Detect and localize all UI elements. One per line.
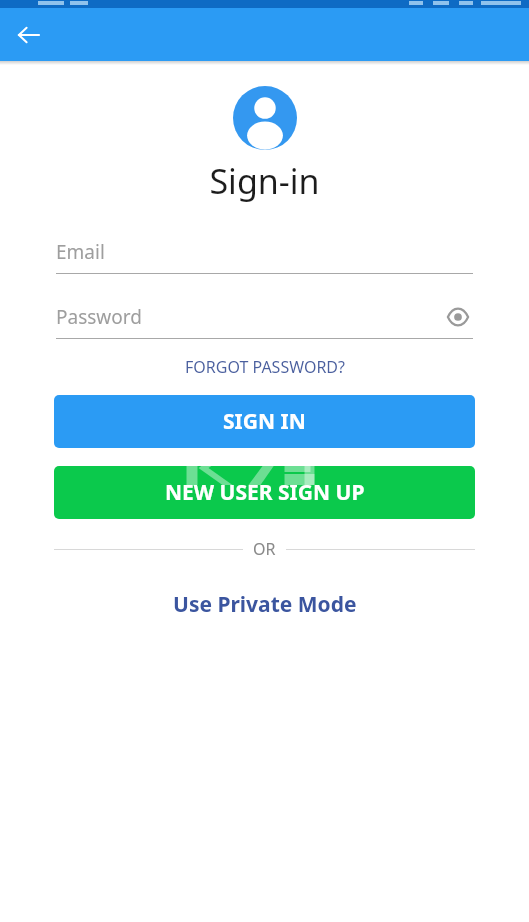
staticText: OR — [253, 538, 276, 560]
button[interactable]: Use Private Mode — [161, 586, 369, 623]
button[interactable]: Show password — [443, 302, 473, 332]
button[interactable]: SIGN IN — [54, 395, 475, 448]
staticText: NEW USER SIGN UP — [165, 478, 365, 507]
staticText: Sign-in — [209, 158, 320, 204]
button[interactable]: Password — [56, 304, 142, 330]
staticText: Use Private Mode — [173, 590, 357, 619]
button[interactable]: NEW USER SIGN UP — [54, 466, 475, 519]
button[interactable]: FORGOT PASSWORD? — [175, 353, 355, 381]
button[interactable]: Email — [56, 236, 473, 274]
staticText: FORGOT PASSWORD? — [185, 356, 345, 378]
staticText: SIGN IN — [223, 407, 306, 436]
button[interactable]: Back — [7, 13, 51, 57]
staticText: Email — [56, 239, 105, 265]
